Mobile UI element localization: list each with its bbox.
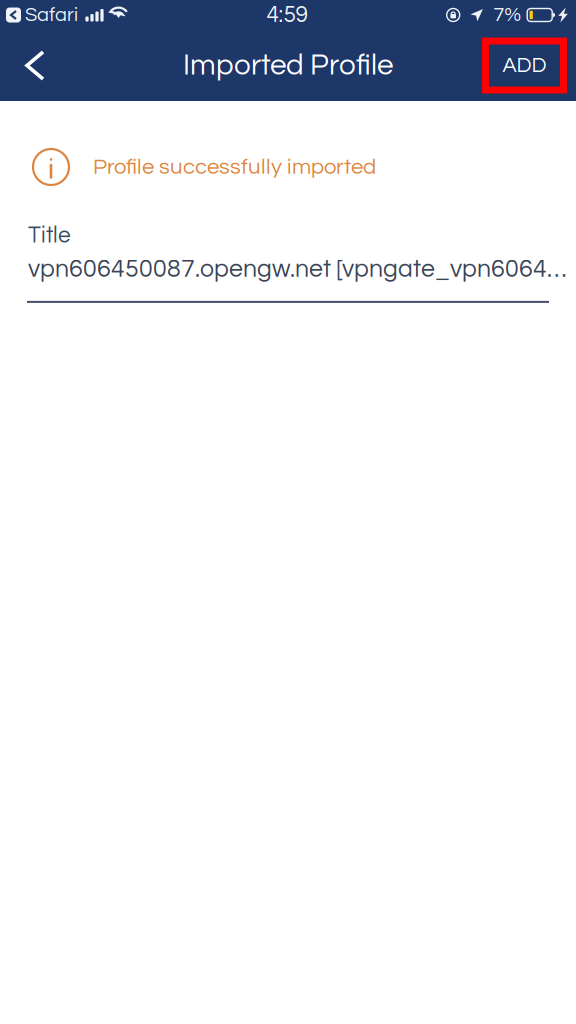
staticText: 7% — [493, 5, 521, 25]
staticText: Imported Profile — [183, 50, 393, 81]
staticText: vpn606450087.opengw.net [vpngate_vpn6064… — [28, 256, 567, 282]
staticText: Title — [28, 224, 71, 247]
staticText: Profile successfully imported — [93, 156, 376, 178]
button[interactable]: ADD — [482, 37, 567, 93]
button[interactable]: Back — [0, 40, 61, 91]
staticText: ADD — [502, 54, 546, 76]
staticText: 4:59 — [267, 3, 308, 27]
staticText: Safari — [25, 5, 78, 25]
